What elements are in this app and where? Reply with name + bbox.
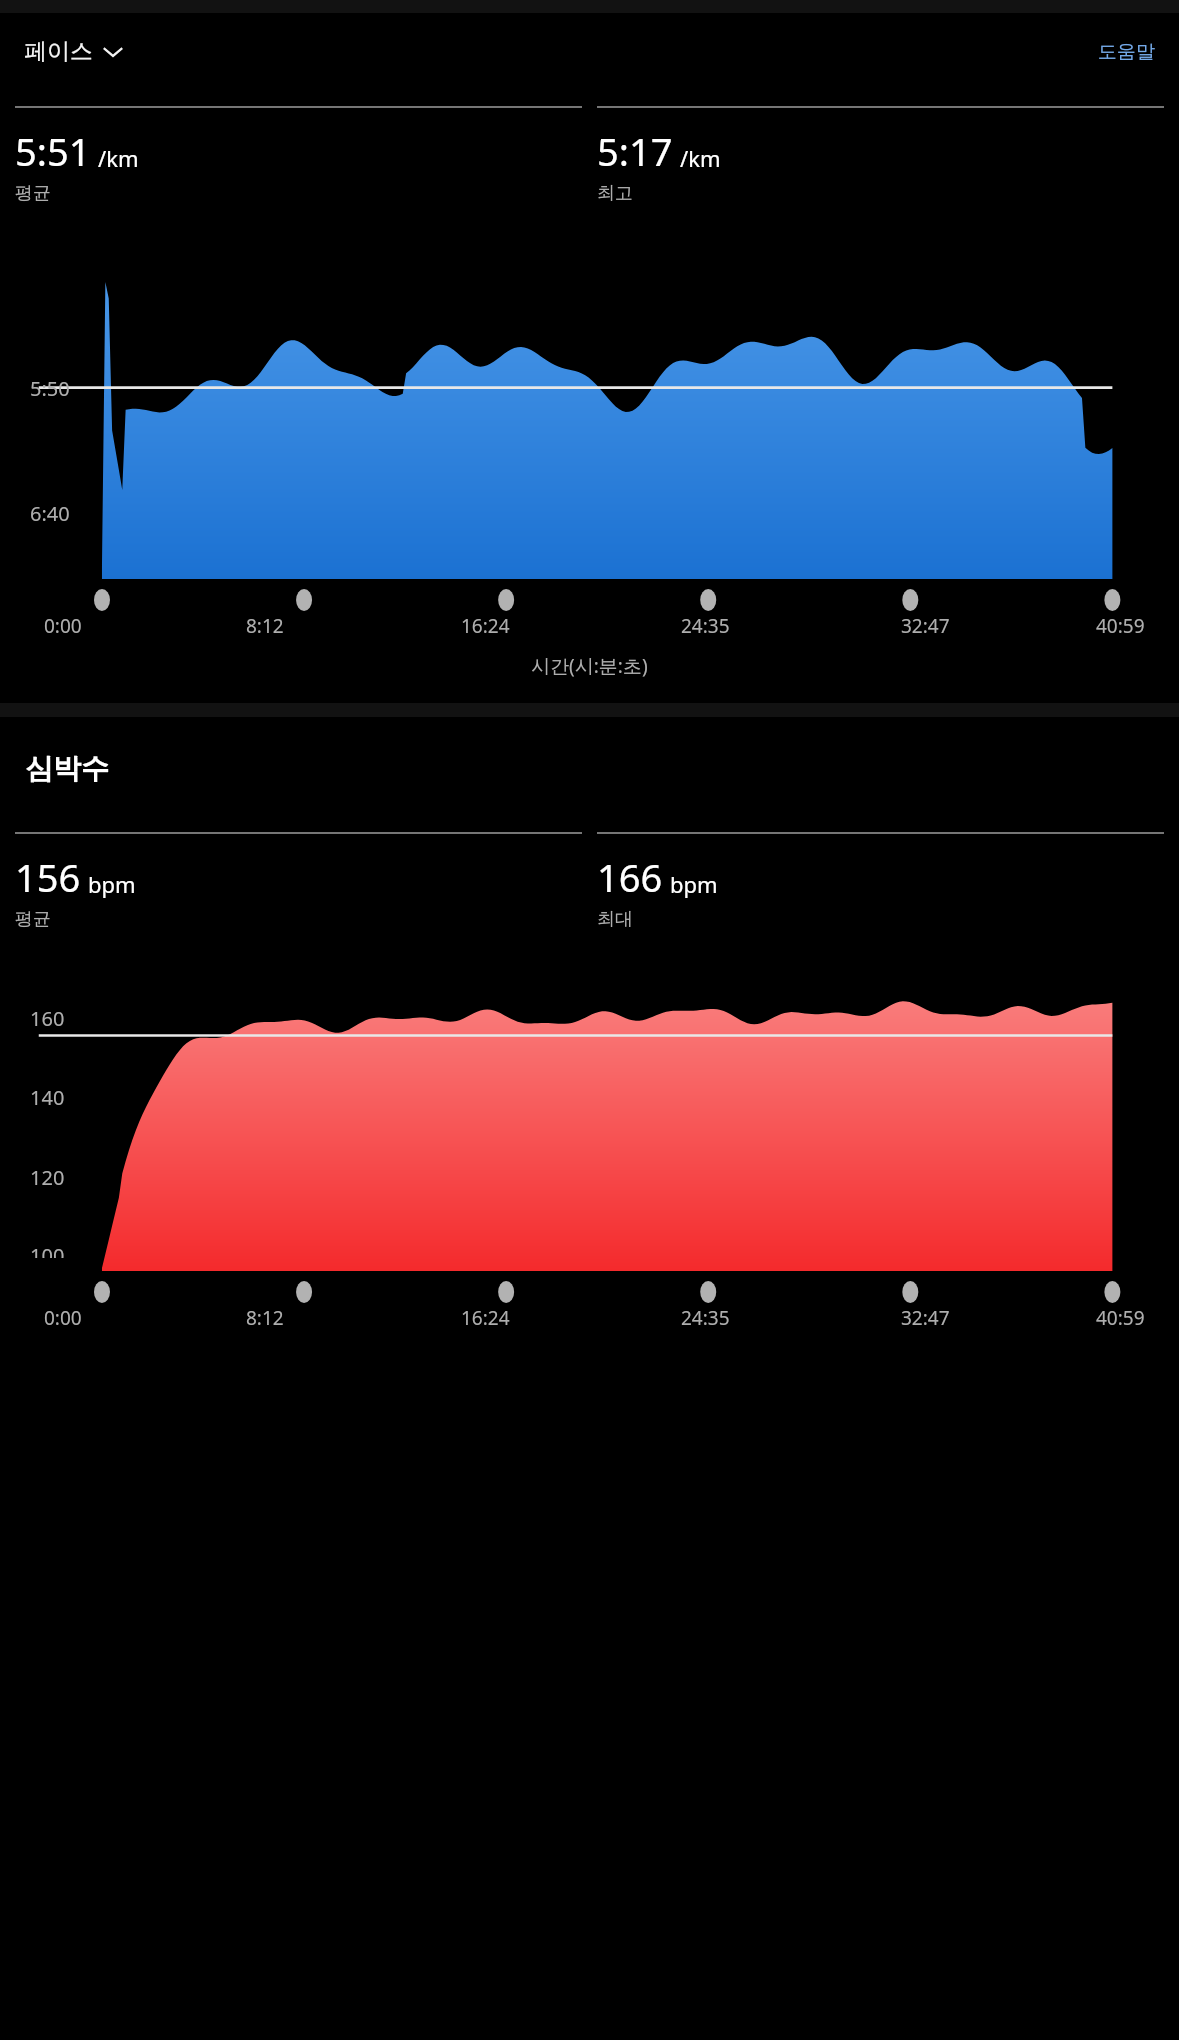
staticText: 8:12 (246, 1305, 284, 1331)
staticText: 0:00 (44, 613, 82, 639)
button[interactable]: 페이스 (18, 29, 129, 74)
staticText: bpm (88, 869, 136, 899)
staticText: 5:51 (15, 125, 91, 177)
staticText: 32:47 (901, 1305, 950, 1331)
staticText: 40:59 (1096, 1305, 1145, 1331)
staticText: 32:47 (901, 613, 950, 639)
staticText: bpm (670, 869, 718, 899)
staticText: 156 (15, 851, 81, 903)
staticText: 166 (597, 851, 663, 903)
staticText: 6:40 (30, 500, 70, 527)
staticText: 시간(시:분:초) (531, 653, 648, 679)
staticText: /km (680, 143, 721, 173)
staticText: 도움말 (1098, 40, 1155, 64)
staticText: 24:35 (681, 613, 730, 639)
staticText: 16:24 (461, 1305, 510, 1331)
staticText: 40:59 (1096, 613, 1145, 639)
staticText: 140 (30, 1084, 65, 1111)
staticText: 평균 (15, 182, 51, 205)
staticText: 5:17 (597, 125, 673, 177)
staticText: 심박수 (25, 751, 109, 786)
staticText: 최대 (597, 908, 633, 931)
staticText: 100 (30, 1242, 65, 1258)
staticText: 16:24 (461, 613, 510, 639)
staticText: 0:00 (44, 1305, 82, 1331)
staticText: 평균 (15, 908, 51, 931)
staticText: 최고 (597, 182, 633, 205)
staticText: /km (98, 143, 139, 173)
staticText: 8:12 (246, 613, 284, 639)
button[interactable]: 도움말 (1092, 32, 1161, 72)
staticText: 5:50 (30, 375, 70, 402)
staticText: 24:35 (681, 1305, 730, 1331)
staticText: 160 (30, 1005, 65, 1032)
staticText: 120 (30, 1164, 65, 1191)
staticText: 페이스 (24, 37, 93, 66)
